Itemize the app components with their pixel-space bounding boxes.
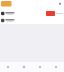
button[interactable]: Account [59, 3, 61, 5]
button[interactable]: Library [0, 62, 16, 72]
button[interactable] [1, 1, 11, 6]
button[interactable]: Search [32, 62, 48, 72]
button[interactable]: Browse [16, 62, 32, 72]
button[interactable]: More [48, 62, 64, 72]
